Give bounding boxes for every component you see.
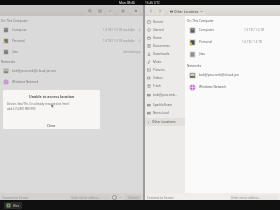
button[interactable]: Menu — [119, 7, 127, 15]
button[interactable]: Files — [4, 202, 22, 209]
button[interactable]: Help — [112, 195, 117, 200]
button[interactable]: Pictures — [145, 66, 185, 74]
staticText: 1.6 TB / 1.6 TB available — [103, 28, 135, 32]
staticText: Connect to Server — [147, 196, 174, 200]
staticText: Connect to Server — [2, 196, 29, 200]
staticText: Networks — [1, 60, 16, 64]
staticText: Other Locations — [152, 120, 176, 124]
staticText: bob@your.smb@icloud.jan.um — [199, 73, 239, 77]
button[interactable]: Enter server address… — [230, 195, 278, 201]
staticText: Device /dev/1fn-3 is already mounted at … — [7, 102, 96, 106]
staticText: 1.6 TB / 1.6 TB — [244, 28, 264, 32]
button[interactable]: bob@your.smb@icloud.jan.um — [185, 69, 280, 81]
button[interactable]: Trash — [145, 82, 185, 90]
button[interactable]: Windows Network — [185, 81, 280, 93]
button[interactable]: Downloads — [145, 50, 185, 58]
staticText: Windows Network — [199, 85, 227, 89]
button[interactable]: 16:46 UTC — [143, 1, 163, 5]
staticText: Other Locations — [174, 10, 199, 14]
button[interactable]: Back — [147, 7, 155, 15]
staticText: Close — [47, 123, 56, 127]
staticText: Enter server address… — [230, 196, 261, 200]
staticText: Computer — [199, 28, 215, 32]
staticText: Pictures — [153, 68, 165, 72]
button[interactable]: Personal — [0, 35, 143, 46]
staticText: bob@your.smb… — [153, 93, 178, 97]
staticText: Documents — [153, 44, 170, 48]
staticText: Windows Network — [12, 80, 39, 84]
button[interactable]: Enter server address… — [70, 195, 110, 201]
button[interactable]: SparkleShare — [145, 101, 185, 109]
staticText: add-f-7c2851f805595 — [7, 107, 36, 111]
button[interactable]: Other Locations — [168, 8, 205, 15]
staticText: 1.6 TB / 1.6 TB available — [103, 39, 135, 43]
staticText: Home — [153, 36, 162, 40]
staticText: Mon 08:46 — [119, 1, 135, 5]
button[interactable]: Personal — [185, 36, 280, 48]
button[interactable]: Jitsu — [185, 48, 280, 60]
button[interactable]: Next.cloud — [145, 109, 185, 117]
button[interactable]: Jitsu — [0, 46, 143, 57]
staticText: Computer — [12, 28, 27, 32]
button[interactable]: Windows Network — [0, 76, 143, 87]
button[interactable]: Recent — [145, 18, 185, 26]
button[interactable]: Computer — [0, 24, 143, 35]
button[interactable]: Documents — [145, 42, 185, 50]
staticText: Videos — [153, 76, 163, 80]
staticText: Unable to access location — [29, 94, 75, 99]
button[interactable]: Music — [145, 58, 185, 66]
staticText: Networks — [187, 64, 202, 68]
staticText: Trash — [153, 84, 161, 88]
button[interactable]: Sort — [106, 7, 114, 15]
button[interactable]: Mon 08:46 — [117, 1, 137, 5]
staticText: 1.6 TB / 1.6 TB — [242, 40, 262, 44]
button[interactable]: Close — [3, 120, 100, 129]
button[interactable]: Computer — [185, 24, 280, 36]
button[interactable]: Starred — [145, 26, 185, 34]
staticText: 16:46 UTC — [145, 1, 161, 5]
button[interactable]: Connect — [125, 195, 141, 201]
button[interactable]: Forward — [156, 7, 164, 15]
button[interactable]: View options — [96, 7, 104, 15]
staticText: On This Computer — [187, 19, 214, 23]
button[interactable]: Other Locations — [145, 118, 185, 126]
staticText: Jitsu — [199, 52, 206, 56]
button[interactable]: More — [118, 195, 123, 200]
button[interactable]: Home — [145, 34, 185, 42]
staticText: Jitsu — [12, 50, 19, 54]
button[interactable]: bob@your.smb… — [145, 91, 185, 99]
staticText: Connect — [128, 196, 139, 200]
staticText: Starred — [153, 28, 164, 32]
staticText: SparkleShare — [153, 103, 173, 107]
staticText: Enter server address… — [70, 196, 101, 200]
staticText: Downloads — [153, 52, 170, 56]
button[interactable]: Search — [86, 7, 94, 15]
button[interactable]: Close window — [132, 7, 140, 15]
staticText: Music — [153, 60, 162, 64]
staticText: Next.cloud — [153, 111, 169, 115]
staticText: bob@your.smb@icloud.jan.um — [12, 69, 57, 73]
button[interactable]: bob@your.smb@icloud.jan.um — [0, 65, 143, 76]
staticText: Recent — [153, 20, 163, 24]
staticText: Personal — [199, 40, 213, 44]
staticText: /dev/vda/grp — [123, 50, 141, 54]
staticText: Personal — [12, 39, 25, 43]
button[interactable]: Videos — [145, 74, 185, 82]
staticText: On This Computer — [1, 19, 28, 23]
staticText: Files — [13, 204, 20, 208]
